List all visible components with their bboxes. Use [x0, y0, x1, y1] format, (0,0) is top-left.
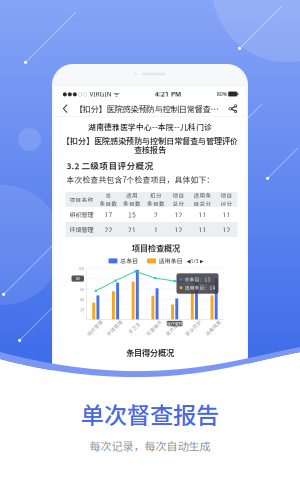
staticText: 80%	[217, 90, 227, 98]
button[interactable]: Share	[228, 104, 237, 113]
staticText: 11	[198, 225, 206, 234]
staticText: 11	[198, 210, 206, 219]
staticText: 总条目：13	[184, 276, 210, 283]
staticText: 湖南德雅医学中心--本院--儿科门诊	[88, 121, 212, 132]
staticText: 20	[80, 307, 84, 312]
staticText: 消毒隔离	[203, 324, 223, 331]
staticText: 15	[128, 210, 136, 219]
staticText: 12	[174, 225, 182, 234]
button[interactable]: Back	[62, 104, 74, 113]
staticText: 医疗废物	[164, 324, 184, 331]
staticText: 4:21 PM	[155, 90, 181, 98]
staticText: ᯤ	[111, 90, 119, 98]
staticText: 12	[222, 225, 230, 234]
staticText: 40	[80, 297, 84, 302]
staticText: 【扣分】医院感染预防与控制日常督查与管理评价	[62, 135, 238, 146]
staticText: 11	[222, 210, 230, 219]
staticText: ◀1/3 ▶	[186, 257, 203, 264]
staticText: 【扣分】医院感染预防与控制日常督查…	[74, 103, 218, 115]
staticText: 1	[154, 225, 158, 234]
staticText: 适用条目	[158, 256, 182, 265]
staticText: 总条目	[120, 256, 138, 265]
staticText: 适用	[126, 191, 138, 199]
staticText: 12	[174, 210, 182, 219]
staticText: 查核报告	[134, 143, 166, 155]
staticText: 适用条	[193, 191, 211, 199]
staticText: 目总分	[193, 200, 211, 208]
staticText: 条目得分概况	[126, 346, 174, 358]
staticText: 手卫生	[127, 324, 142, 331]
staticText: 总分	[172, 200, 184, 208]
staticText: 职业防护	[183, 324, 203, 331]
staticText: 项目	[172, 191, 184, 199]
staticText: 条目数	[99, 200, 117, 208]
staticText: 无菌操作	[144, 324, 164, 331]
staticText: VIRGIN	[87, 90, 111, 98]
staticText: 总	[105, 191, 111, 199]
staticText: 80	[76, 276, 80, 281]
staticText: 80	[80, 276, 84, 282]
staticText: 本次检查共包含7个检查项目，具体如下：	[66, 174, 214, 185]
staticText: 60	[80, 286, 84, 292]
staticText: 环境管理	[105, 324, 125, 331]
staticText: 3.2 二级项目评分概况	[66, 159, 153, 172]
staticText: 环境管理	[69, 225, 93, 234]
staticText: 组织管理	[85, 324, 105, 331]
staticText: 评分	[220, 200, 232, 208]
staticText: 项目检查概况	[132, 242, 180, 254]
staticText: 22	[104, 225, 112, 234]
staticText: ●●●	[62, 91, 77, 97]
staticText: 组织管理	[69, 210, 93, 219]
staticText: ○○	[77, 91, 87, 97]
staticText: 项目名称	[69, 195, 93, 203]
staticText: 适用条目：14	[184, 284, 215, 291]
staticText: 条目数	[123, 200, 141, 208]
staticText: 项目	[220, 191, 232, 199]
staticText: 条目数	[147, 200, 165, 208]
staticText: 100	[78, 266, 84, 271]
staticText: 2	[154, 210, 158, 219]
staticText: 单次督查报告	[81, 397, 219, 431]
staticText: 17	[104, 210, 112, 219]
staticText: 医疗废物	[167, 320, 183, 327]
staticText: 21	[128, 225, 136, 234]
staticText: 每次记录，每次自动生成	[89, 438, 210, 454]
staticText: 扣分	[150, 191, 162, 199]
